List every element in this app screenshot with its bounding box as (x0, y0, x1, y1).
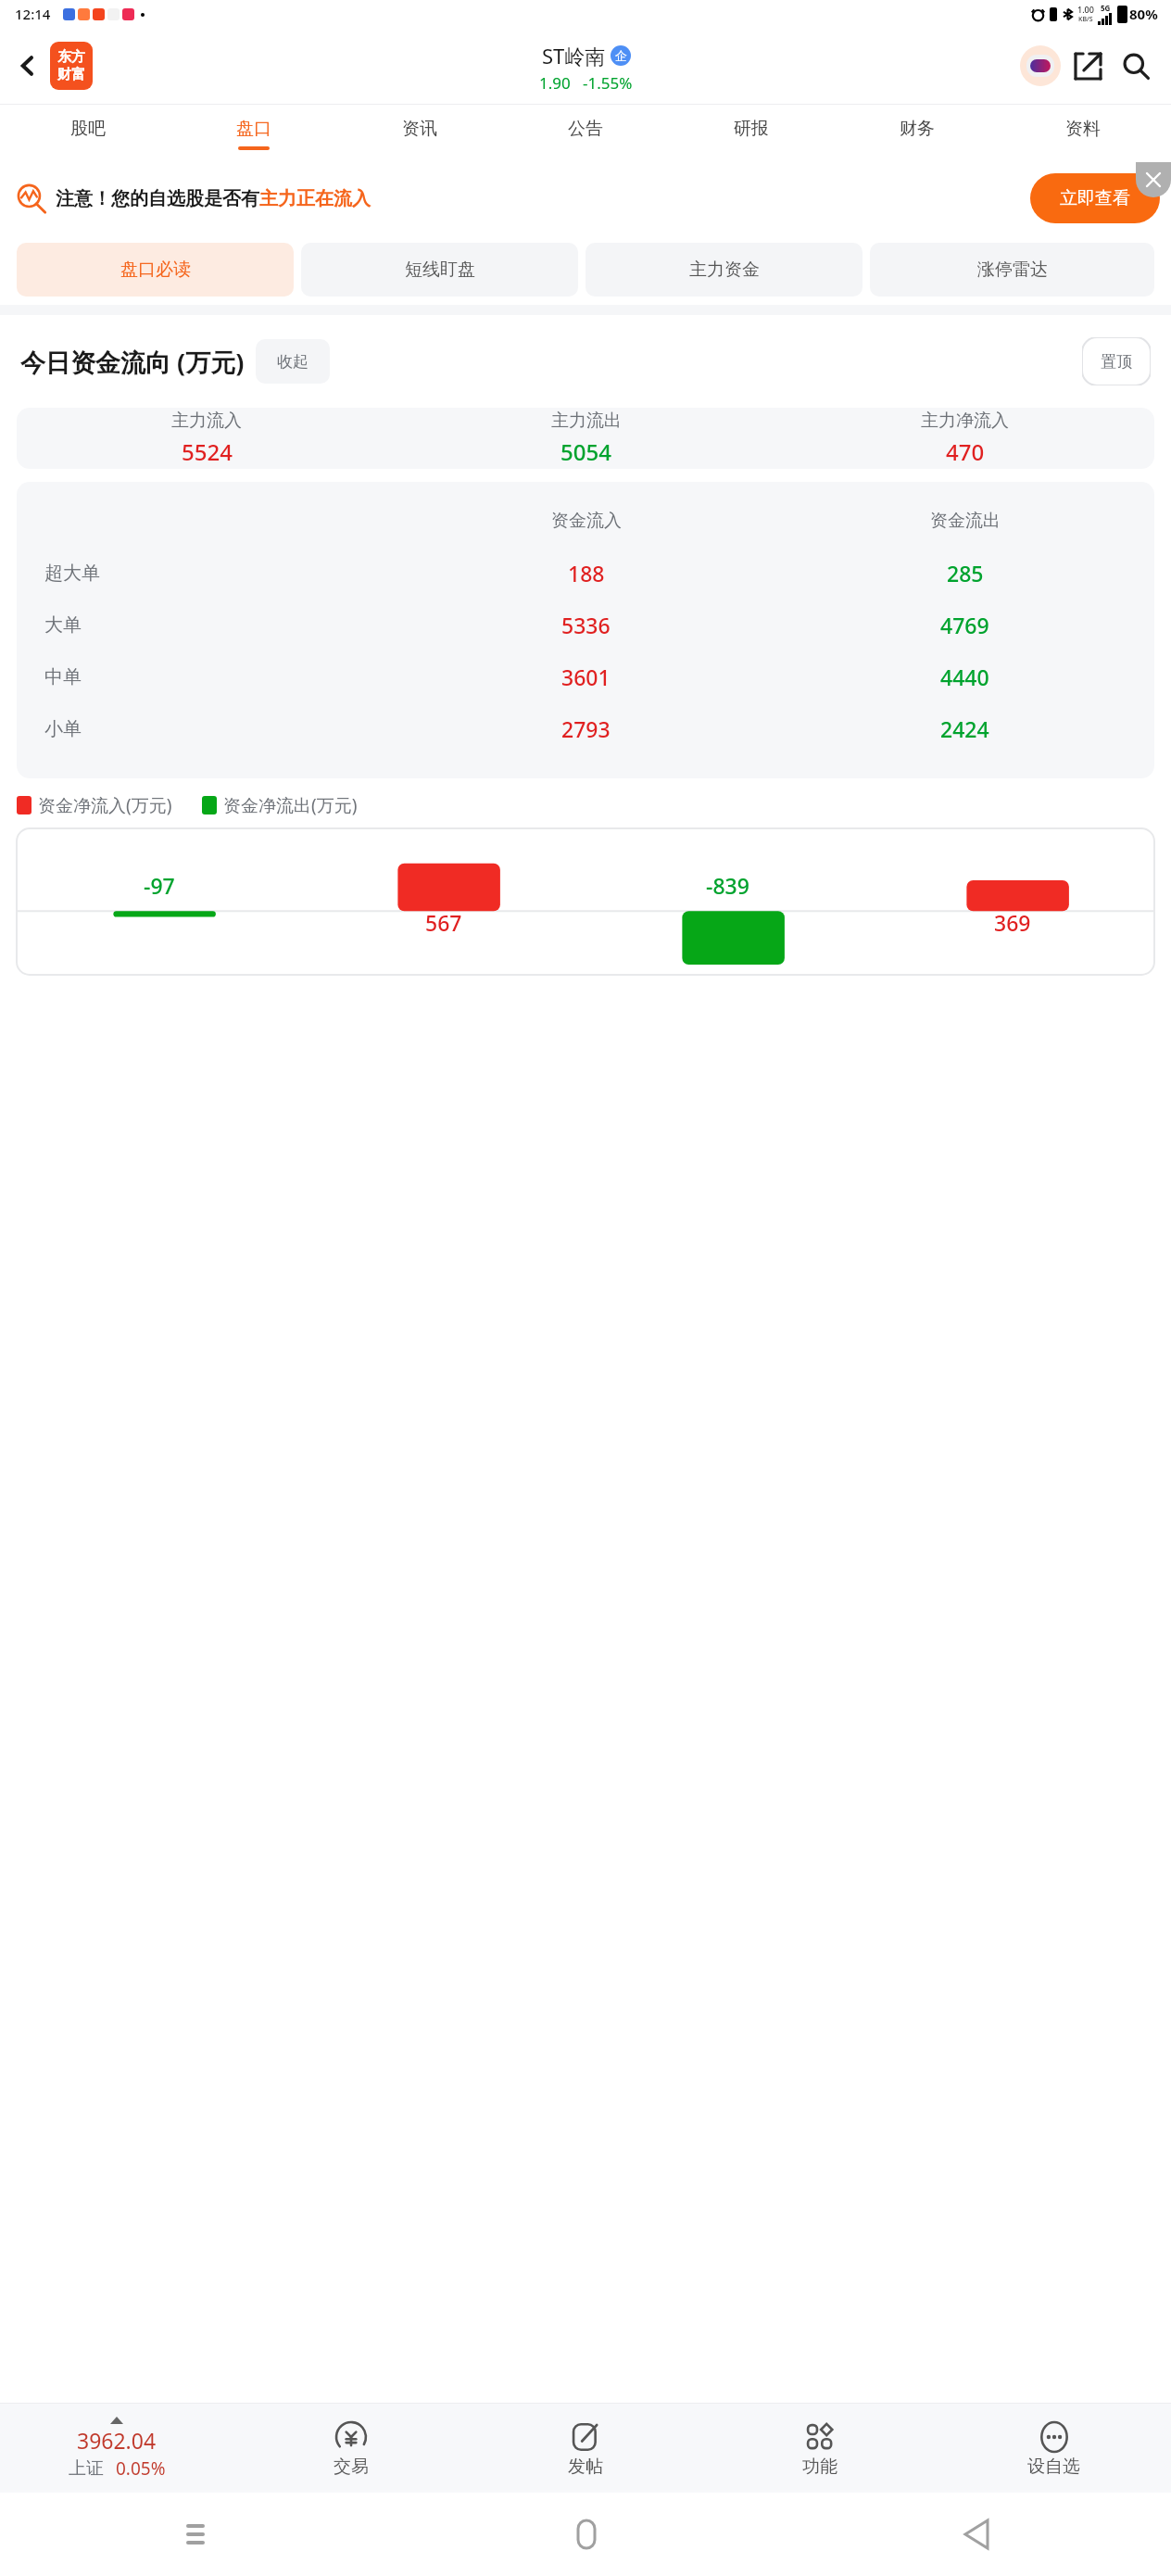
button[interactable]: AI 助手 (1017, 43, 1064, 89)
staticText: KB/S (1078, 15, 1093, 24)
button[interactable]: 注意！您的自选股是否有 (17, 162, 1160, 234)
staticText: 2424 (940, 714, 989, 743)
staticText: -839 (706, 871, 749, 900)
staticText: 发帖 (568, 2456, 603, 2478)
button[interactable]: Back (949, 2507, 1004, 2562)
staticText: 主力资金 (689, 259, 760, 281)
staticText: 财务 (900, 118, 935, 140)
button[interactable]: 小单 (17, 702, 1154, 754)
button[interactable]: Share (1064, 42, 1112, 90)
staticText: 小单 (44, 717, 82, 740)
button[interactable]: 设自选 (937, 2404, 1171, 2493)
staticText: 4769 (940, 611, 989, 639)
staticText: 1.00 (1077, 4, 1094, 15)
staticText: 470 (946, 436, 985, 467)
staticText: 股吧 (70, 118, 106, 140)
button[interactable]: 涨停雷达 (870, 243, 1154, 297)
staticText: 资料 (1065, 118, 1101, 140)
staticText: 5G (1101, 3, 1111, 13)
button[interactable]: 功能 (702, 2404, 937, 2493)
staticText: 收起 (277, 352, 308, 372)
staticText: 资讯 (402, 118, 437, 140)
staticText: 企 (615, 48, 627, 63)
staticText: 盘口 (236, 118, 271, 140)
staticText: 公告 (568, 118, 603, 140)
staticText: ST岭南 (542, 42, 606, 69)
staticText: 5054 (560, 436, 611, 467)
staticText: 567 (425, 908, 462, 937)
staticText: 5524 (182, 436, 233, 467)
button[interactable]: Back (7, 45, 48, 86)
button[interactable]: Search (1112, 42, 1160, 90)
staticText: 置顶 (1101, 352, 1132, 372)
button[interactable]: 置顶 (1082, 337, 1151, 385)
button[interactable]: 超大单 (17, 547, 1154, 599)
button[interactable]: 盘口 (170, 105, 336, 162)
staticText: 4440 (940, 663, 989, 691)
staticText: 资金净流出(万元) (223, 793, 358, 817)
button[interactable]: 立即查看 (1030, 173, 1160, 223)
button[interactable]: 短线盯盘 (301, 243, 578, 297)
button[interactable]: Recents (168, 2507, 223, 2562)
staticText: 0.05% (116, 2456, 166, 2481)
staticText: 12:14 (15, 5, 51, 23)
staticText: 盘口必读 (120, 259, 191, 281)
staticText: 主力净流入 (921, 410, 1009, 432)
staticText: 研报 (734, 118, 769, 140)
button[interactable]: 交易 (233, 2404, 468, 2493)
button[interactable]: 3962.04 (0, 2404, 233, 2493)
button[interactable]: 收起 (256, 339, 330, 384)
staticText: 80% (1129, 5, 1158, 23)
button[interactable]: 研报 (668, 105, 834, 162)
button[interactable]: 中单 (17, 650, 1154, 702)
staticText: 立即查看 (1060, 187, 1130, 209)
staticText: -97 (144, 871, 175, 900)
staticText: 资金流出 (930, 510, 1001, 532)
staticText: -1.55% (583, 72, 633, 94)
button[interactable]: 公告 (502, 105, 668, 162)
button[interactable]: 资讯 (336, 105, 502, 162)
staticText: 中单 (44, 665, 82, 688)
button[interactable]: 资料 (1000, 105, 1165, 162)
staticText: 财富 (57, 66, 85, 83)
button[interactable]: 盘口必读 (17, 243, 294, 297)
button[interactable]: 主力流入 (17, 408, 1154, 469)
button[interactable]: Home (559, 2507, 614, 2562)
staticText: 2793 (561, 714, 611, 743)
staticText: 今日资金流向 (万元) (20, 345, 245, 379)
staticText: 3601 (561, 663, 611, 691)
staticText: 大单 (44, 613, 82, 637)
button[interactable]: Close (1136, 162, 1171, 197)
staticText: 涨停雷达 (977, 259, 1048, 281)
staticText: 设自选 (1027, 2456, 1080, 2478)
staticText: 主力流出 (551, 410, 622, 432)
button[interactable]: 东方财富 (50, 42, 93, 90)
button[interactable]: 发帖 (468, 2404, 702, 2493)
staticText: 交易 (334, 2456, 369, 2478)
staticText: 5336 (561, 611, 611, 639)
staticText: 285 (947, 559, 984, 587)
staticText: 1.90 (539, 72, 571, 94)
staticText: 注意！您的自选股是否有 (56, 187, 259, 210)
staticText: 短线盯盘 (405, 259, 475, 281)
staticText: 上证 (69, 2457, 104, 2480)
staticText: 东方 (57, 48, 85, 66)
staticText: 资金净流入(万元) (38, 793, 172, 817)
button[interactable]: 财务 (834, 105, 1000, 162)
staticText: 主力正在流入 (259, 187, 371, 210)
staticText: 超大单 (44, 562, 100, 585)
button[interactable]: 主力资金 (585, 243, 863, 297)
button[interactable]: 股吧 (6, 105, 170, 162)
staticText: 188 (568, 559, 605, 587)
staticText: 资金流入 (551, 510, 622, 532)
staticText: 3962.04 (77, 2426, 157, 2455)
staticText: 功能 (802, 2456, 837, 2478)
staticText: 369 (994, 908, 1031, 937)
button[interactable]: 大单 (17, 599, 1154, 650)
staticText: 主力流入 (171, 410, 242, 432)
